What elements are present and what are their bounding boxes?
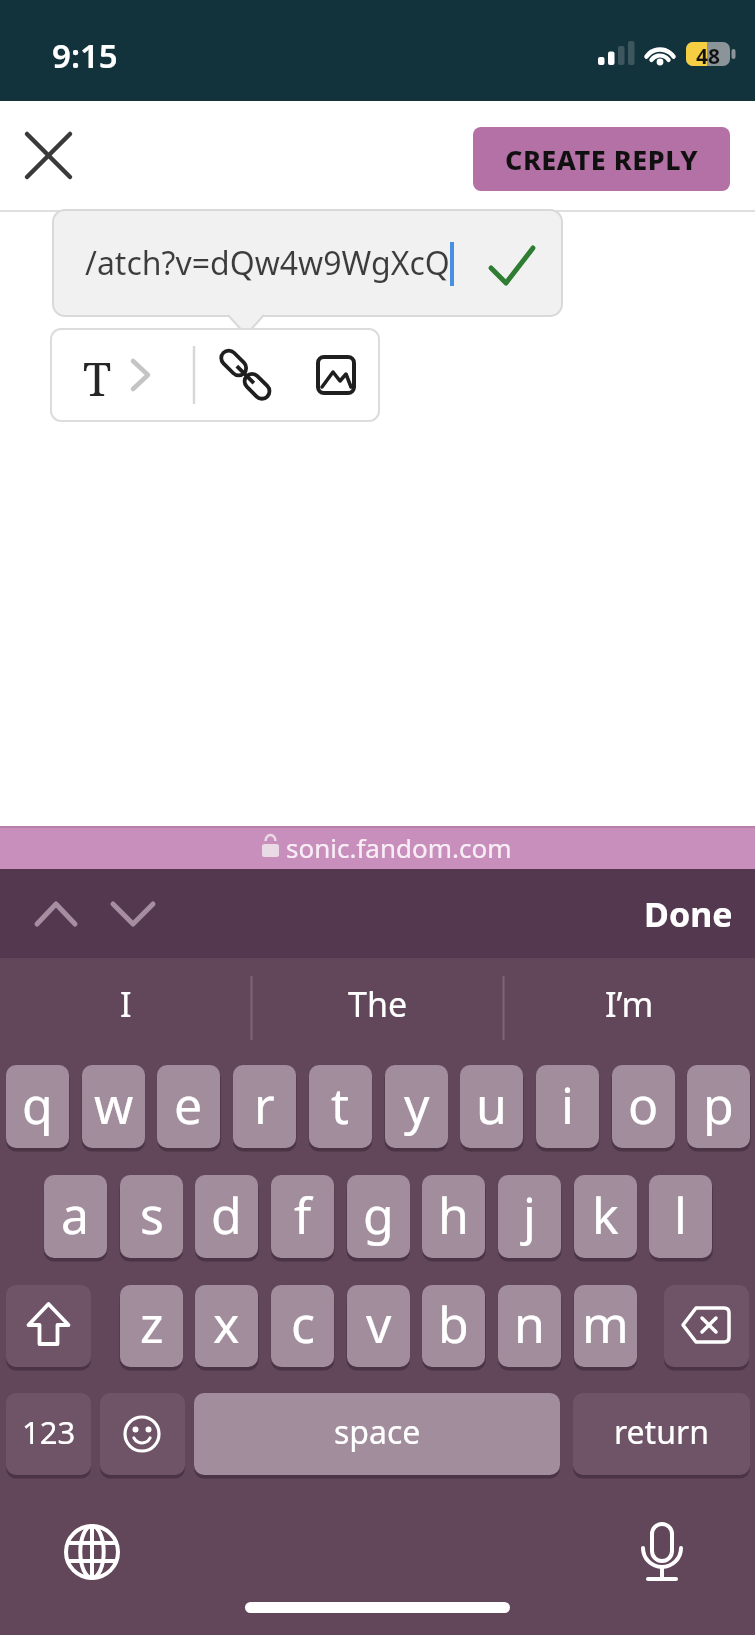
button[interactable] <box>20 884 92 944</box>
button[interactable]: i <box>536 1065 599 1148</box>
button[interactable]: T <box>74 347 120 403</box>
staticText: T <box>83 347 112 403</box>
staticText: d <box>211 1181 242 1249</box>
staticText: k <box>592 1181 619 1249</box>
button[interactable]: o <box>612 1065 675 1148</box>
button[interactable] <box>478 236 546 296</box>
staticText: s <box>140 1181 164 1249</box>
button[interactable] <box>100 1393 185 1475</box>
staticText: h <box>438 1181 469 1249</box>
button[interactable]: w <box>82 1065 145 1148</box>
button[interactable] <box>16 123 82 189</box>
staticText: /atch?v=dQw4w9WgXcQ <box>85 241 450 285</box>
staticText: z <box>140 1290 164 1358</box>
staticText: g <box>363 1181 394 1249</box>
staticText: I’m <box>605 981 654 1027</box>
button[interactable]: k <box>574 1175 637 1258</box>
staticText: f <box>294 1181 312 1249</box>
staticText: m <box>582 1290 629 1358</box>
button[interactable]: d <box>195 1175 258 1258</box>
button[interactable]: f <box>271 1175 334 1258</box>
staticText: t <box>331 1071 350 1139</box>
staticText: The <box>348 981 408 1027</box>
button[interactable]: b <box>422 1285 485 1367</box>
button[interactable]: c <box>271 1285 334 1367</box>
staticText: y <box>404 1071 430 1139</box>
button[interactable]: g <box>347 1175 410 1258</box>
button[interactable]: space <box>194 1393 560 1475</box>
staticText: CREATE REPLY <box>505 141 699 178</box>
button[interactable]: The <box>252 958 503 1050</box>
staticText: r <box>254 1071 275 1139</box>
staticText: p <box>703 1071 734 1139</box>
button[interactable]: x <box>195 1285 258 1367</box>
staticText: x <box>213 1290 240 1358</box>
staticText: j <box>523 1181 536 1249</box>
button[interactable] <box>664 1285 749 1367</box>
button[interactable] <box>0 826 755 869</box>
button[interactable] <box>630 1516 694 1582</box>
staticText: w <box>94 1071 134 1139</box>
staticText: 48 <box>696 42 721 66</box>
staticText: return <box>614 1410 709 1454</box>
staticText: a <box>61 1181 90 1249</box>
staticText: 123 <box>22 1411 76 1453</box>
button[interactable]: q <box>6 1065 69 1148</box>
button[interactable]: j <box>498 1175 561 1258</box>
button[interactable]: CREATE REPLY <box>473 127 730 191</box>
staticText: e <box>174 1071 203 1139</box>
button[interactable]: z <box>120 1285 183 1367</box>
button[interactable]: l <box>649 1175 712 1258</box>
button[interactable]: h <box>422 1175 485 1258</box>
button[interactable] <box>6 1285 91 1367</box>
button[interactable]: 123 <box>6 1393 91 1475</box>
staticText: Done <box>644 891 733 937</box>
button[interactable]: t <box>309 1065 372 1148</box>
button[interactable] <box>97 884 169 944</box>
staticText: l <box>674 1181 687 1249</box>
button[interactable]: a <box>44 1175 107 1258</box>
staticText: u <box>476 1071 507 1139</box>
button[interactable]: s <box>120 1175 183 1258</box>
button[interactable]: I <box>0 958 251 1050</box>
staticText: v <box>366 1290 392 1358</box>
button[interactable]: p <box>687 1065 750 1148</box>
button[interactable] <box>303 343 369 407</box>
button[interactable]: m <box>574 1285 637 1367</box>
button[interactable]: r <box>233 1065 296 1148</box>
button[interactable]: I’m <box>504 958 755 1050</box>
button[interactable]: n <box>498 1285 561 1367</box>
button[interactable]: u <box>460 1065 523 1148</box>
staticText: space <box>334 1410 421 1454</box>
button[interactable]: v <box>347 1285 410 1367</box>
button[interactable]: return <box>573 1393 750 1475</box>
staticText: c <box>291 1290 315 1358</box>
staticText: q <box>22 1071 53 1139</box>
staticText: I <box>120 981 132 1027</box>
staticText: i <box>561 1071 574 1139</box>
staticText: sonic.fandom.com <box>286 830 512 865</box>
button[interactable] <box>60 1520 124 1584</box>
staticText: n <box>514 1290 545 1358</box>
staticText: 9:15 <box>52 33 118 78</box>
button[interactable]: y <box>385 1065 448 1148</box>
button[interactable] <box>212 343 278 407</box>
button[interactable]: e <box>157 1065 220 1148</box>
button[interactable]: Done <box>628 880 748 948</box>
staticText: o <box>628 1071 659 1139</box>
staticText: b <box>438 1290 469 1358</box>
